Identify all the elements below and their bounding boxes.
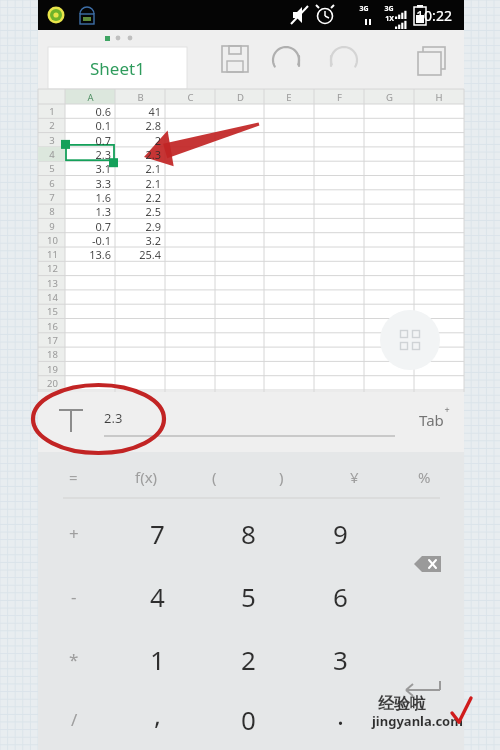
button[interactable]: / — [39, 695, 109, 743]
button[interactable]: Sheet1 — [48, 47, 187, 89]
button[interactable]: = — [38, 453, 108, 501]
staticText: 2 — [154, 133, 161, 148]
staticText: 0 — [241, 702, 256, 737]
staticText: 2 — [49, 119, 55, 132]
button[interactable]: Save — [212, 40, 258, 82]
staticText: 1 — [49, 105, 55, 118]
button[interactable]: 2 — [213, 635, 283, 683]
button[interactable]: ( — [179, 453, 249, 501]
staticText: f(x) — [135, 467, 158, 487]
staticText: Tab — [419, 410, 444, 430]
staticText: 2.8 — [145, 118, 161, 133]
staticText: 3.3 — [95, 176, 111, 191]
button[interactable]: ) — [246, 453, 316, 501]
staticText: A — [87, 91, 94, 104]
button[interactable]: Tab — [405, 405, 457, 435]
button[interactable]: ¥ — [319, 453, 389, 501]
button[interactable]: 3 — [305, 635, 375, 683]
button[interactable]: + — [39, 509, 109, 557]
staticText: 18 — [47, 348, 58, 361]
staticText: 2.1 — [145, 176, 161, 191]
staticText: jingyanla.com — [372, 712, 463, 730]
staticText: * — [69, 648, 79, 671]
staticText: 10 — [47, 234, 58, 247]
button[interactable]: 6 — [305, 572, 375, 620]
staticText: 6 — [49, 177, 55, 190]
staticText: 25.4 — [139, 247, 161, 262]
staticText: 41 — [148, 104, 161, 119]
staticText: -0.1 — [91, 233, 111, 248]
staticText: H — [435, 91, 443, 104]
staticText: . — [337, 697, 344, 732]
staticText: 1X — [385, 14, 394, 24]
staticText: 13.6 — [89, 247, 111, 262]
staticText: 19 — [47, 363, 58, 376]
button[interactable]: Enter — [396, 672, 452, 708]
button[interactable]: 0 — [213, 695, 283, 743]
staticText: 2.2 — [145, 190, 161, 205]
button[interactable] — [38, 392, 464, 452]
staticText: 17 — [47, 334, 58, 347]
button[interactable]: 5 — [213, 572, 283, 620]
button[interactable]: 8 — [213, 509, 283, 557]
staticText: 12 — [47, 262, 58, 275]
staticText: B — [137, 91, 144, 104]
staticText: 2.9 — [145, 219, 161, 234]
staticText: + — [69, 522, 79, 545]
staticText: 10:22 — [416, 6, 452, 25]
button[interactable]: Backspace — [404, 546, 452, 582]
button[interactable]: * — [39, 635, 109, 683]
staticText: + — [444, 403, 450, 415]
button[interactable]: Sheets — [408, 40, 454, 82]
staticText: ) — [279, 467, 284, 487]
staticText: 2.3 — [95, 147, 111, 162]
staticText: 2 — [241, 642, 256, 677]
staticText: 7 — [150, 516, 165, 551]
staticText: 6 — [333, 579, 348, 614]
button[interactable]: 4 — [122, 572, 192, 620]
staticText: 0.7 — [95, 133, 111, 148]
button[interactable]: Redo — [324, 40, 370, 82]
button[interactable]: f(x) — [111, 453, 181, 501]
staticText: 20 — [47, 377, 58, 390]
staticText: 5 — [49, 162, 55, 175]
staticText: 1 — [150, 642, 165, 677]
button[interactable]: , — [122, 690, 192, 738]
staticText: / — [71, 708, 78, 731]
button[interactable]: 1 — [122, 635, 192, 683]
button[interactable]: . — [305, 690, 375, 738]
staticText: 5 — [241, 579, 256, 614]
staticText: 1.3 — [95, 204, 111, 219]
staticText: 2.3 — [104, 409, 123, 427]
staticText: 15 — [47, 305, 58, 318]
staticText: 0.7 — [95, 219, 111, 234]
staticText: 0.1 — [95, 118, 111, 133]
button[interactable]: 7 — [122, 509, 192, 557]
staticText: 8 — [241, 516, 256, 551]
staticText: % — [418, 467, 431, 487]
staticText: 0.6 — [95, 104, 111, 119]
staticText: E — [286, 91, 292, 104]
staticText: 4 — [49, 148, 55, 161]
button[interactable]: Undo — [266, 40, 312, 82]
staticText: = — [69, 467, 78, 487]
staticText: 9 — [333, 516, 348, 551]
staticText: F — [337, 91, 342, 104]
staticText: G — [386, 91, 393, 104]
staticText: 14 — [47, 291, 58, 304]
staticText: 经验啦 — [378, 694, 426, 714]
staticText: 3G — [359, 4, 369, 14]
staticText: 8 — [49, 205, 55, 218]
staticText: 2.5 — [145, 204, 161, 219]
staticText: - — [71, 585, 77, 608]
staticText: 3G — [384, 4, 394, 14]
button[interactable]: % — [389, 453, 459, 501]
staticText: , — [154, 697, 161, 732]
staticText: 4 — [150, 579, 165, 614]
button[interactable]: 9 — [305, 509, 375, 557]
staticText: 3 — [333, 642, 348, 677]
staticText: 9 — [49, 220, 55, 233]
staticText: 3.2 — [145, 233, 161, 248]
staticText: Sheet1 — [90, 57, 145, 80]
